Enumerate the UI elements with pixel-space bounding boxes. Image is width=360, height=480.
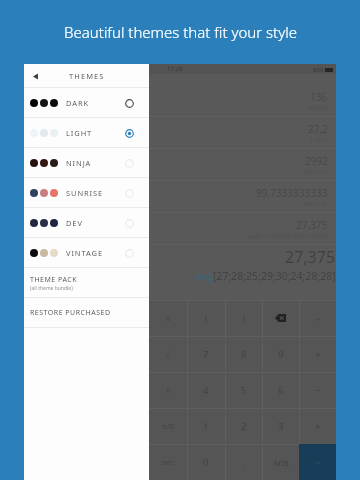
staticText: 27,375 <box>296 218 328 232</box>
button[interactable]: LIGHT <box>24 118 149 148</box>
button[interactable]: DEV <box>24 208 149 238</box>
staticText: LIGHT <box>66 128 93 138</box>
staticText: THEME PACK <box>30 275 78 285</box>
staticText: e <box>166 313 171 323</box>
staticText: 0 <box>203 456 209 469</box>
staticText: 136 <box>310 90 328 104</box>
staticText: 6 <box>278 384 284 397</box>
staticText: NINJA <box>66 158 92 168</box>
staticText: DARK <box>66 98 90 108</box>
staticText: = <box>315 456 321 469</box>
button[interactable]: DARK <box>24 88 149 118</box>
staticText: sec <box>162 457 174 467</box>
staticText: SUNRISE <box>66 188 104 198</box>
staticText: DEV <box>66 218 83 228</box>
staticText: 80% <box>313 66 324 73</box>
staticText: 1 <box>203 420 209 433</box>
staticText: 2992 <box>305 154 328 168</box>
staticText: 3 <box>278 420 284 433</box>
staticText: 2 <box>241 420 247 433</box>
staticText: ÷ <box>315 312 321 325</box>
staticText: 7 <box>203 348 209 361</box>
staticText: 27,375 <box>285 246 336 268</box>
staticText: + <box>315 420 321 433</box>
staticText: × <box>315 348 321 361</box>
staticText: VINTAGE <box>66 248 103 258</box>
staticText: RESTORE PURCHASED <box>30 308 111 318</box>
staticText: [27;28;25;29;30;24;28;28] <box>213 269 336 283</box>
button[interactable]: RESTORE PURCHASED <box>24 298 149 328</box>
staticText: ans <box>273 456 289 469</box>
staticText: (all theme bundle) <box>30 285 73 292</box>
staticText: 4 <box>203 384 209 397</box>
staticText: 17:28 <box>167 65 183 73</box>
staticText: 5 <box>241 384 247 397</box>
button[interactable]: ans <box>262 444 299 480</box>
button[interactable]: Back <box>24 65 46 87</box>
staticText: π/2 <box>162 421 174 431</box>
staticText: √ <box>166 350 171 359</box>
staticText: Beautiful themes that fit your style <box>64 22 297 42</box>
button[interactable]: NINJA <box>24 148 149 178</box>
staticText: 9 <box>278 348 284 361</box>
staticText: THEMES <box>69 71 105 81</box>
other: Backspace <box>275 314 286 322</box>
staticText: avg <box>195 269 213 283</box>
staticText: 99,7333333333 <box>256 186 328 200</box>
staticText: 8 <box>241 348 247 361</box>
button[interactable]: SUNRISE <box>24 178 149 208</box>
staticText: 27,2 <box>308 122 328 136</box>
staticText: ) <box>242 312 245 325</box>
button[interactable]: THEME PACK <box>24 268 149 298</box>
button[interactable]: Backspace <box>262 300 299 336</box>
staticText: π <box>166 385 171 395</box>
button[interactable]: VINTAGE <box>24 238 149 268</box>
staticText: ( <box>205 312 208 325</box>
